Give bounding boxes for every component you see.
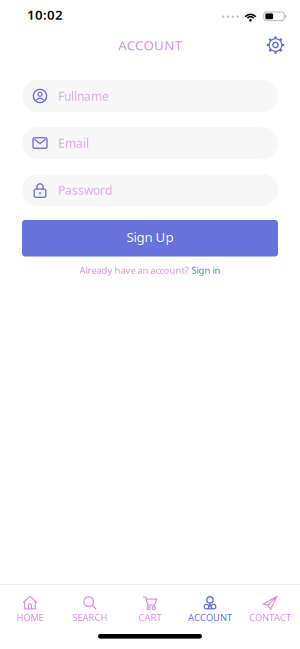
staticText: HOME <box>16 611 43 624</box>
staticText: CONTACT <box>249 611 291 624</box>
staticText: ACCOUNT <box>118 36 182 54</box>
staticText: SEARCH <box>72 611 107 624</box>
textField[interactable]: Email <box>22 127 278 159</box>
staticText: Sign Up <box>126 228 173 246</box>
staticText: CART <box>138 611 161 624</box>
button[interactable]: Settings <box>266 35 300 54</box>
secureTextField[interactable]: Password <box>22 174 278 206</box>
button[interactable]: Sign Up <box>22 220 278 256</box>
button[interactable]: CART <box>120 595 180 622</box>
textField[interactable]: Fullname <box>22 80 278 112</box>
staticText: Already have an account? <box>79 264 188 276</box>
staticText: Fullname <box>58 88 109 104</box>
staticText: Email <box>58 135 89 151</box>
button[interactable]: ACCOUNT <box>180 595 240 622</box>
staticText: Password <box>58 182 112 198</box>
staticText: ACCOUNT <box>188 611 232 624</box>
staticText: Sign in <box>191 264 220 276</box>
button[interactable]: Sign in <box>191 264 220 276</box>
button[interactable]: SEARCH <box>60 595 120 622</box>
button[interactable]: CONTACT <box>240 595 300 622</box>
staticText: 10:02 <box>27 6 63 23</box>
button[interactable]: HOME <box>0 595 60 622</box>
